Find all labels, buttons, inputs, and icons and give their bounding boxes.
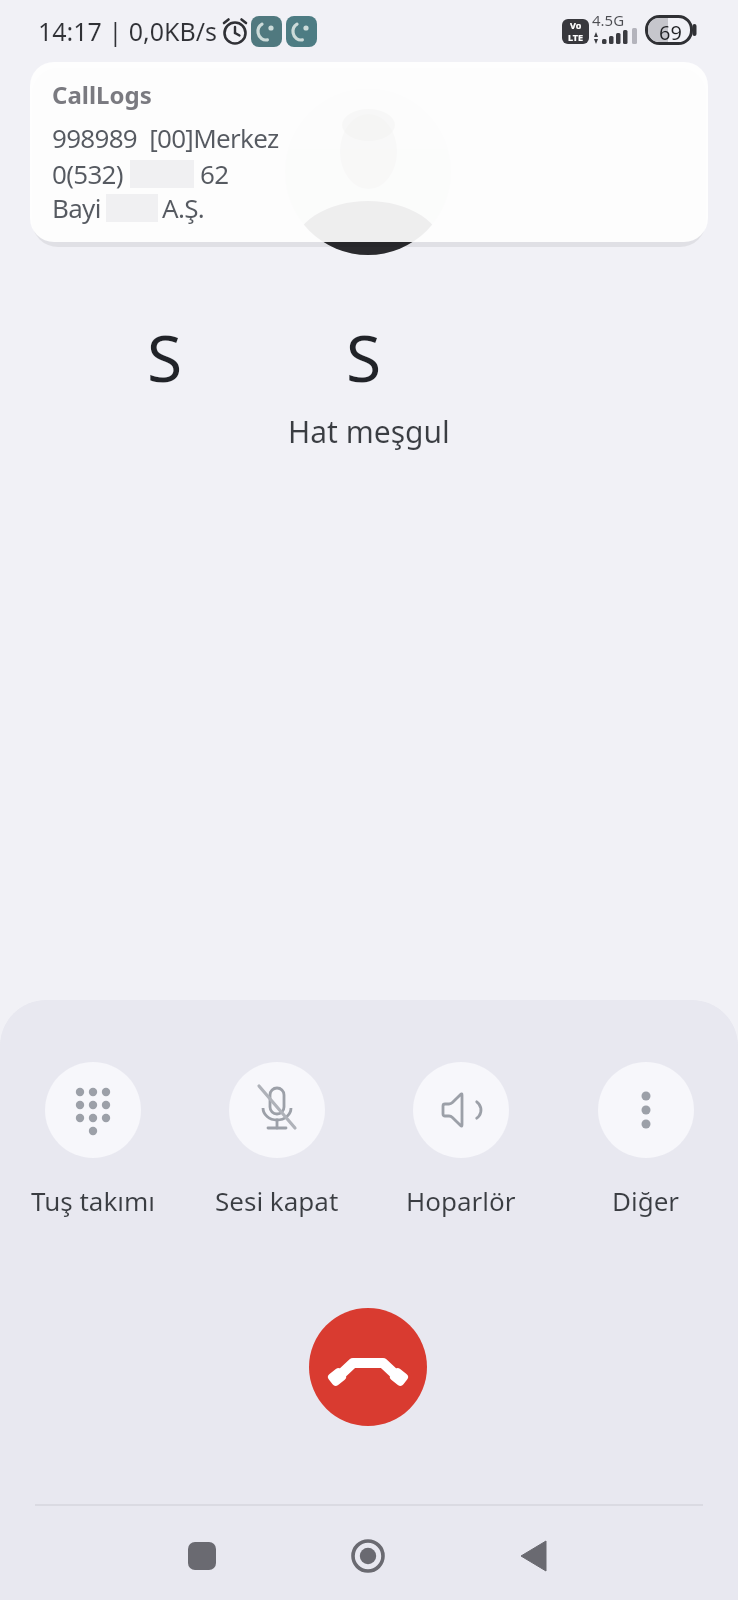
button[interactable] xyxy=(413,1062,509,1158)
staticText: Hat meşgul xyxy=(288,411,450,451)
staticText: Tuş takımı xyxy=(31,1183,156,1217)
staticText: 998989 [00]Merkez xyxy=(52,120,279,155)
button[interactable] xyxy=(229,1062,325,1158)
staticText: Sesi kapat xyxy=(215,1183,339,1217)
staticText: 62 xyxy=(200,156,229,191)
staticText: Vo xyxy=(570,19,582,31)
button[interactable] xyxy=(515,1536,555,1576)
staticText: LTE xyxy=(568,31,584,43)
staticText: Bayi xyxy=(52,190,101,225)
button[interactable] xyxy=(182,1536,222,1576)
staticText: 4.5G xyxy=(592,10,625,30)
button[interactable] xyxy=(598,1062,694,1158)
staticText: Diğer xyxy=(612,1183,680,1217)
staticText: 0(532) xyxy=(52,156,123,191)
staticText: 14:17 | 0,0KB/s xyxy=(38,14,217,48)
staticText: S xyxy=(147,314,183,390)
staticText: A.Ş. xyxy=(162,190,205,225)
staticText: S xyxy=(346,314,382,390)
button[interactable] xyxy=(30,62,708,242)
button[interactable] xyxy=(348,1536,388,1576)
button[interactable] xyxy=(309,1308,427,1426)
staticText: CallLogs xyxy=(52,78,152,111)
button[interactable] xyxy=(45,1062,141,1158)
staticText: Hoparlör xyxy=(406,1183,516,1217)
staticText: 69 xyxy=(659,19,682,46)
